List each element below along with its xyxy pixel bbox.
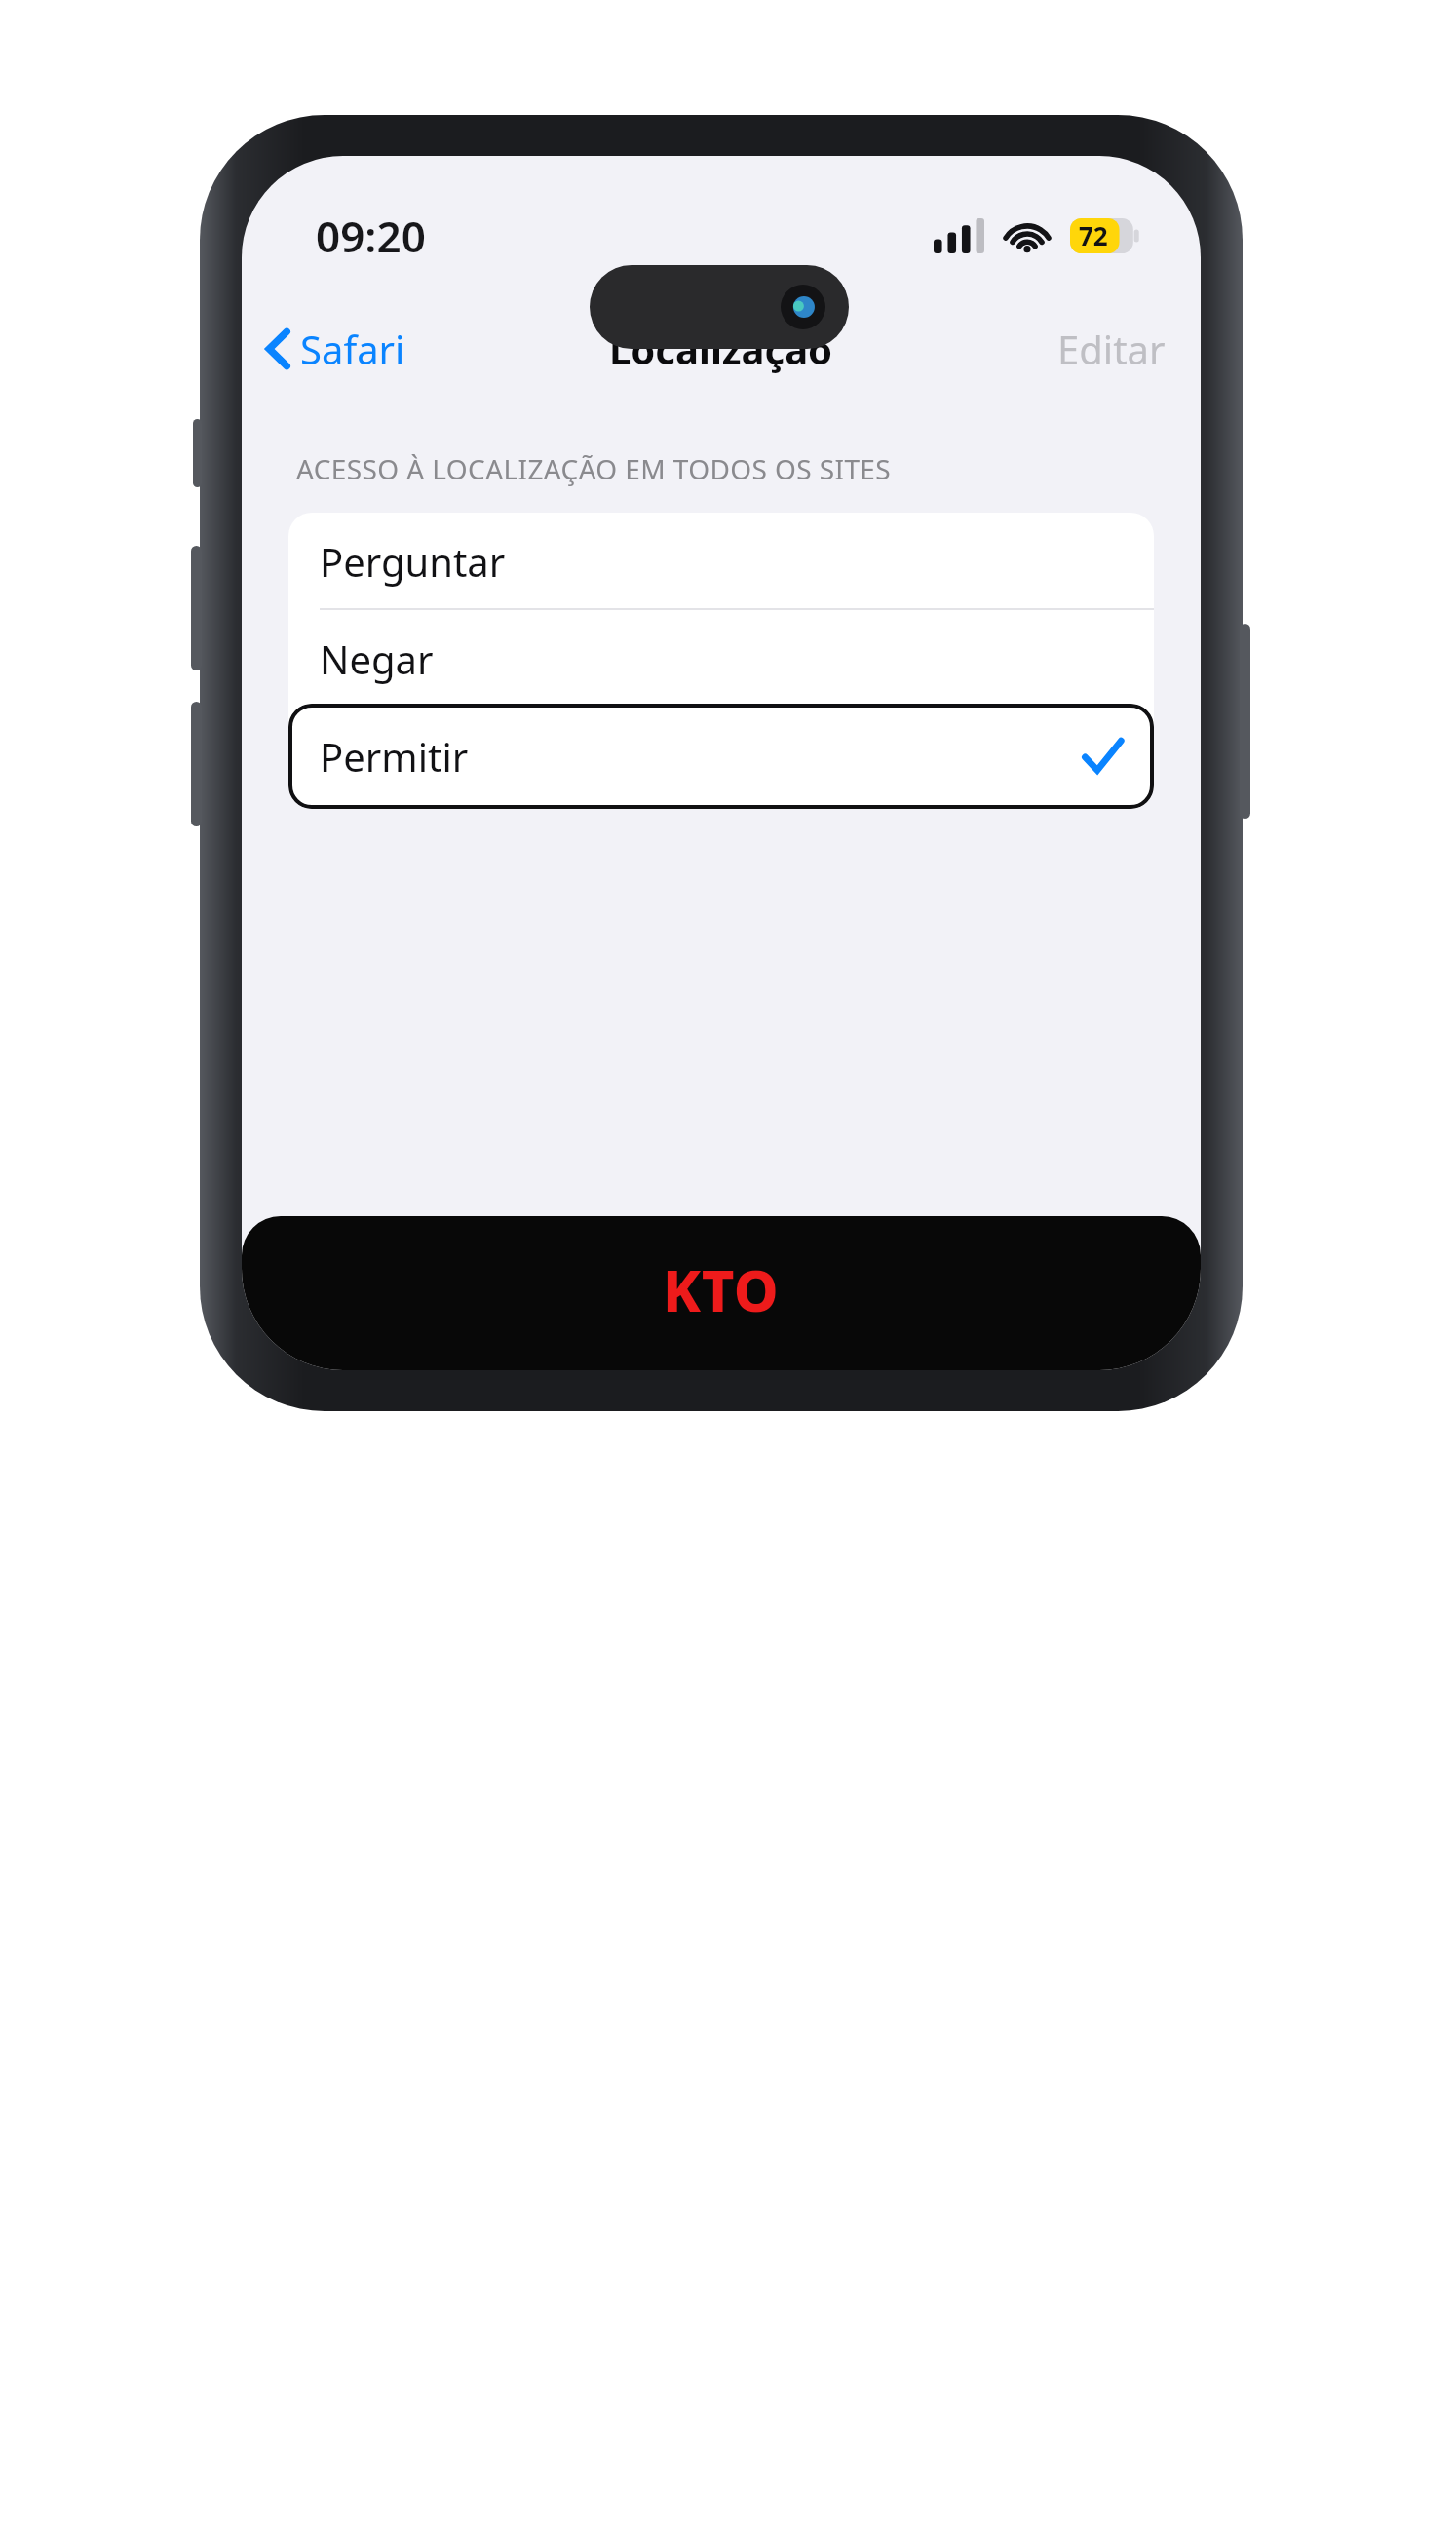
other: Bateria 72 por cento [1070, 218, 1140, 253]
staticText: Localização [609, 323, 833, 375]
staticText: Permitir [320, 730, 469, 783]
button[interactable]: Perguntar [288, 513, 1154, 610]
button[interactable]: Permitir [288, 708, 1154, 805]
other: Wi-Fi [1004, 218, 1051, 253]
button[interactable]: Editar [1022, 311, 1201, 387]
other: Voltar [267, 329, 288, 368]
staticText: KTO [663, 1251, 780, 1328]
button[interactable]: Negar [288, 610, 1154, 708]
staticText: 09:20 [316, 207, 426, 265]
staticText: Editar [1057, 323, 1166, 375]
other: Sinal de celular [934, 218, 984, 253]
staticText: Safari [300, 323, 405, 375]
staticText: Perguntar [320, 535, 506, 588]
staticText: 72 [1079, 218, 1108, 252]
staticText: ACESSO À LOCALIZAÇÃO EM TODOS OS SITES [296, 450, 892, 487]
button[interactable]: Voltar [242, 313, 423, 385]
staticText: Negar [320, 632, 434, 685]
other: Selecionado [1082, 736, 1123, 777]
